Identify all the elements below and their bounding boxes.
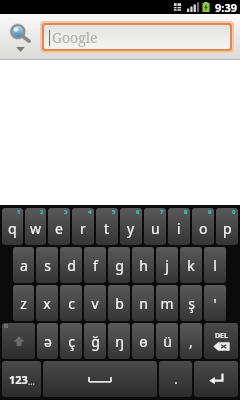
button[interactable]: f (84, 247, 106, 283)
staticText: 9 (208, 208, 212, 216)
button[interactable]: n (132, 285, 154, 321)
staticText: o (199, 219, 208, 238)
button[interactable]: Delete (204, 323, 238, 359)
button[interactable]: 8 (168, 208, 190, 245)
staticText: g (115, 256, 124, 275)
staticText: m (160, 294, 174, 313)
button[interactable]: 7 (144, 208, 166, 245)
staticText: c (68, 294, 75, 313)
button[interactable]: x (36, 285, 58, 321)
staticText: ... (28, 376, 35, 387)
staticText: 7 (160, 208, 164, 216)
button[interactable]: ө (132, 323, 154, 359)
button[interactable]: ə (37, 323, 58, 359)
button[interactable]: j (156, 247, 178, 283)
staticText: 123 (9, 372, 28, 387)
button[interactable]: 1 (2, 208, 23, 245)
staticText: k (187, 256, 195, 275)
button[interactable]: ü (156, 323, 178, 359)
button[interactable]: ğ (84, 323, 106, 359)
staticText: e (55, 219, 63, 238)
button[interactable]: Enter (194, 361, 238, 397)
staticText: r (80, 219, 86, 238)
staticText: b (115, 294, 124, 313)
button[interactable]: k (180, 247, 202, 283)
button[interactable]: ' (204, 285, 226, 321)
button[interactable]: b (108, 285, 130, 321)
button[interactable]: Space (43, 361, 157, 397)
button[interactable]: m (156, 285, 178, 321)
staticText: , (189, 332, 193, 351)
staticText: ' (213, 294, 217, 313)
staticText: n (139, 294, 148, 313)
staticText: ŋ (115, 332, 124, 351)
button[interactable]: s (36, 247, 58, 283)
staticText: f (93, 256, 98, 275)
staticText: a (20, 256, 28, 275)
staticText: 8 (184, 208, 188, 216)
staticText: u (151, 219, 160, 238)
button[interactable]: Shift (2, 323, 35, 359)
staticText: Google (52, 28, 98, 47)
button[interactable]: 6 (120, 208, 142, 245)
staticText: y (127, 219, 135, 238)
button[interactable]: . (159, 361, 192, 397)
staticText: 9:39 (215, 0, 237, 14)
button[interactable]: z (13, 285, 34, 321)
button[interactable]: 3 (48, 208, 70, 245)
button[interactable]: d (60, 247, 82, 283)
button[interactable]: 2 (25, 208, 46, 245)
button[interactable]: l (204, 247, 226, 283)
staticText: ü (163, 332, 172, 351)
button[interactable]: ş (180, 285, 202, 321)
button[interactable]: a (13, 247, 34, 283)
staticText: ç (68, 332, 75, 351)
staticText: 6 (136, 208, 140, 216)
staticText: z (20, 294, 27, 313)
staticText: ğ (91, 332, 100, 351)
button[interactable]: 4 (72, 208, 94, 245)
staticText: DEL (215, 331, 228, 341)
staticText: i (177, 219, 181, 238)
staticText: 1 (17, 208, 21, 216)
staticText: h (139, 256, 148, 275)
button[interactable]: 123 (2, 361, 41, 397)
staticText: 2 (40, 208, 44, 216)
staticText: x (43, 294, 51, 313)
button[interactable]: v (84, 285, 106, 321)
button[interactable]: h (132, 247, 154, 283)
button[interactable]: 9 (192, 208, 214, 245)
staticText: ө (139, 332, 148, 351)
staticText: t (104, 219, 110, 238)
button[interactable]: c (60, 285, 82, 321)
staticText: 3 (64, 208, 68, 216)
staticText: w (30, 219, 42, 238)
staticText: . (174, 370, 178, 388)
button[interactable]: Search source (0, 14, 40, 60)
staticText: l (213, 256, 217, 275)
button[interactable]: 5 (96, 208, 118, 245)
staticText: q (8, 219, 17, 238)
staticText: v (91, 294, 99, 313)
button[interactable]: , (180, 323, 202, 359)
staticText: ş (188, 294, 195, 313)
staticText: ə (44, 332, 52, 351)
button[interactable]: 0 (216, 208, 238, 245)
staticText: 0 (232, 208, 236, 216)
staticText: 4 (88, 208, 92, 216)
button[interactable]: ŋ (108, 323, 130, 359)
staticText: s (44, 256, 51, 275)
staticText: d (67, 256, 76, 275)
staticText: p (223, 219, 232, 238)
staticText: j (165, 256, 169, 275)
button[interactable]: Google (44, 25, 230, 49)
button[interactable]: ç (60, 323, 82, 359)
staticText: 5 (112, 208, 116, 216)
button[interactable]: g (108, 247, 130, 283)
